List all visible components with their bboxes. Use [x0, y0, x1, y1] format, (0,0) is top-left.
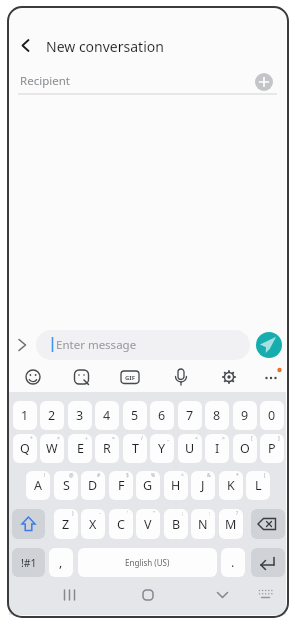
- staticText: M: [225, 516, 237, 533]
- staticText: ]: [278, 435, 280, 442]
- button[interactable]: C: [109, 509, 133, 539]
- button[interactable]: M: [219, 509, 243, 539]
- staticText: Z: [62, 516, 70, 533]
- button[interactable]: 3: [68, 401, 92, 430]
- button[interactable]: [169, 365, 193, 389]
- button[interactable]: 6: [150, 401, 174, 430]
- button[interactable]: 9: [233, 401, 257, 430]
- staticText: D: [88, 477, 98, 494]
- button[interactable]: [217, 365, 241, 389]
- button[interactable]: [210, 582, 236, 608]
- staticText: ?: [236, 510, 239, 517]
- staticText: ': [127, 510, 129, 517]
- staticText: 3: [76, 407, 84, 424]
- staticText: J: [201, 477, 205, 494]
- staticText: &: [207, 472, 211, 479]
- staticText: GIF: [125, 374, 135, 382]
- button[interactable]: U: [178, 434, 202, 463]
- staticText: E: [77, 440, 84, 457]
- staticText: ^: [181, 472, 184, 479]
- staticText: ): [72, 510, 74, 517]
- staticText: S: [63, 477, 70, 494]
- staticText: Q: [20, 440, 30, 457]
- button[interactable]: A: [26, 471, 50, 500]
- button[interactable]: 4: [95, 401, 119, 430]
- button[interactable]: E: [68, 434, 92, 463]
- staticText: A: [34, 477, 42, 494]
- button[interactable]: F: [109, 471, 133, 500]
- staticText: $: [126, 472, 129, 479]
- staticText: +: [30, 435, 33, 442]
- staticText: !#1: [21, 556, 37, 570]
- button[interactable]: T: [123, 434, 147, 463]
- button[interactable]: [12, 509, 45, 539]
- button[interactable]: [256, 332, 282, 358]
- button[interactable]: B: [164, 509, 188, 539]
- staticText: L: [255, 477, 262, 494]
- button[interactable]: [16, 34, 38, 56]
- button[interactable]: [14, 336, 30, 353]
- button[interactable]: X: [81, 509, 105, 539]
- button[interactable]: W: [40, 434, 64, 463]
- staticText: (: [264, 472, 266, 479]
- button[interactable]: 0: [260, 401, 284, 430]
- staticText: ": [153, 510, 156, 517]
- button[interactable]: ,: [49, 548, 73, 577]
- staticText: 9: [241, 407, 249, 424]
- button[interactable]: [57, 582, 83, 608]
- button[interactable]: [251, 509, 285, 539]
- button[interactable]: English (US): [78, 548, 217, 577]
- button[interactable]: Z: [54, 509, 78, 539]
- staticText: W: [46, 440, 58, 457]
- button[interactable]: !#1: [12, 548, 45, 577]
- button[interactable]: 1: [13, 401, 37, 430]
- button[interactable]: [118, 365, 142, 389]
- staticText: ×: [57, 435, 60, 442]
- button[interactable]: R: [95, 434, 119, 463]
- button[interactable]: 8: [205, 401, 229, 430]
- button[interactable]: Q: [13, 434, 37, 463]
- button[interactable]: V: [136, 509, 160, 539]
- staticText: ;: [182, 510, 184, 517]
- staticText: @: [69, 472, 74, 479]
- button[interactable]: D: [81, 471, 105, 500]
- button[interactable]: O: [233, 434, 257, 463]
- button[interactable]: 5: [123, 401, 147, 430]
- button[interactable]: 7: [178, 401, 202, 430]
- button[interactable]: [135, 582, 161, 608]
- staticText: N: [198, 516, 208, 533]
- staticText: X: [89, 516, 97, 533]
- button[interactable]: L: [246, 471, 270, 500]
- button[interactable]: [255, 73, 273, 91]
- button[interactable]: .: [221, 548, 245, 577]
- button[interactable]: 2: [40, 401, 64, 430]
- button[interactable]: [70, 365, 94, 389]
- button[interactable]: I: [205, 434, 229, 463]
- button[interactable]: G: [136, 471, 160, 500]
- staticText: 4: [103, 407, 111, 424]
- staticText: 8: [213, 407, 221, 424]
- staticText: T: [132, 440, 139, 457]
- button[interactable]: K: [219, 471, 243, 500]
- button[interactable]: N: [191, 509, 215, 539]
- staticText: >: [222, 435, 225, 442]
- button[interactable]: P: [260, 434, 284, 463]
- button[interactable]: [253, 582, 279, 608]
- button[interactable]: [21, 365, 45, 389]
- button[interactable]: [36, 330, 250, 360]
- button[interactable]: J: [191, 471, 215, 500]
- button[interactable]: H: [164, 471, 188, 500]
- staticText: K: [227, 477, 235, 494]
- staticText: G: [143, 477, 153, 494]
- staticText: 2: [48, 407, 56, 424]
- staticText: I: [215, 440, 220, 457]
- staticText: Enter message: [56, 337, 137, 353]
- staticText: .: [231, 554, 235, 571]
- button[interactable]: S: [54, 471, 78, 500]
- staticText: :: [209, 510, 211, 517]
- button[interactable]: [251, 548, 285, 577]
- button[interactable]: [259, 365, 283, 389]
- staticText: 6: [158, 407, 166, 424]
- staticText: O: [240, 440, 250, 457]
- button[interactable]: Y: [150, 434, 174, 463]
